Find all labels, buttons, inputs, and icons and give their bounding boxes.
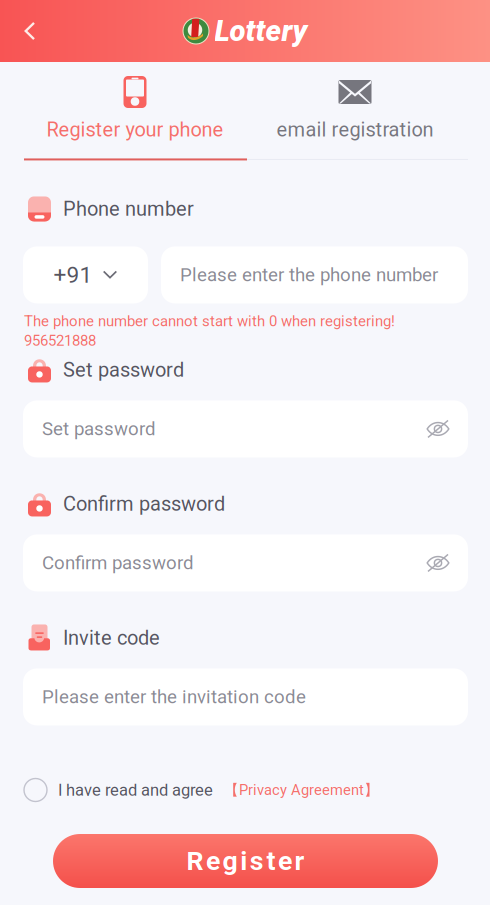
staticText: Lottery [214, 14, 307, 48]
button[interactable]: I have read and agree [0, 770, 490, 810]
button[interactable]: Register your phone [25, 62, 245, 158]
staticText: 956521888 [24, 332, 96, 349]
button[interactable]: +91 [23, 246, 148, 303]
button[interactable]: Show password [421, 412, 455, 446]
button[interactable]: Back [6, 7, 54, 55]
staticText: Set password [63, 358, 184, 382]
staticText: Set password [42, 418, 156, 440]
staticText: 【Privacy Agreement】 [224, 781, 379, 799]
staticText: Please enter the phone number [180, 264, 438, 286]
button[interactable]: Register [0, 834, 490, 888]
staticText: Invite code [63, 626, 160, 650]
staticText: The phone number cannot start with 0 whe… [24, 312, 395, 330]
staticText: email registration [276, 118, 433, 141]
staticText: +91 [53, 262, 92, 288]
button[interactable]: Show password [421, 546, 455, 580]
staticText: Register [186, 845, 305, 877]
staticText: Phone number [63, 197, 194, 221]
staticText: I have read and agree [58, 780, 213, 800]
staticText: Register your phone [46, 118, 223, 141]
button[interactable]: email registration [245, 62, 465, 158]
staticText: Confirm password [42, 552, 194, 574]
staticText: Please enter the invitation code [42, 686, 306, 708]
staticText: Confirm password [63, 492, 225, 516]
